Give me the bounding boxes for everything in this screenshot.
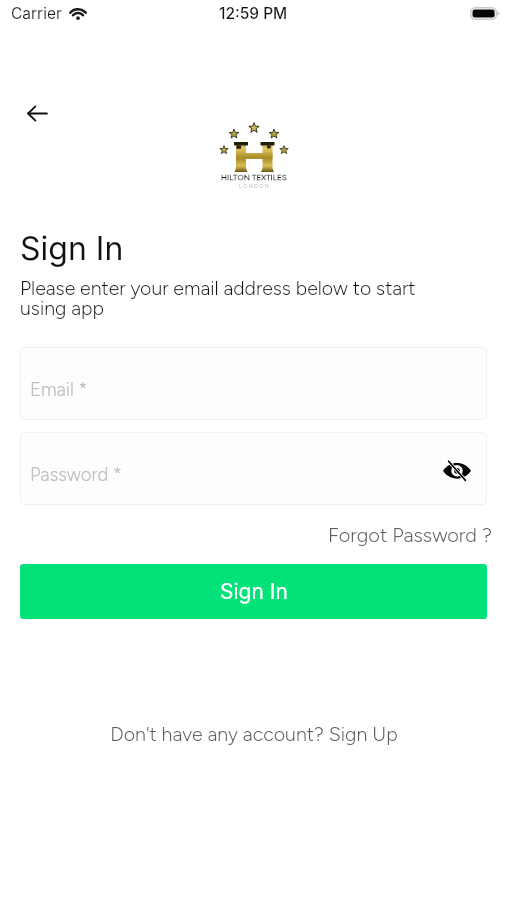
staticText: Sign In bbox=[220, 579, 288, 604]
staticText: HILTON TEXTILES bbox=[221, 172, 287, 182]
button[interactable]: Sign In bbox=[20, 564, 487, 619]
staticText: Password * bbox=[30, 463, 122, 485]
staticText: L O N D O N bbox=[239, 183, 269, 189]
staticText: Email * bbox=[30, 378, 88, 400]
staticText: Don't have any account? Sign Up bbox=[110, 722, 398, 746]
staticText: 12:59 PM bbox=[219, 4, 288, 23]
button[interactable]: Email * bbox=[20, 347, 487, 420]
button[interactable]: Don't have any account? Sign Up bbox=[108, 720, 400, 748]
button[interactable]: Show password bbox=[439, 452, 475, 488]
staticText: Sign In bbox=[20, 229, 124, 268]
staticText: Forgot Password ? bbox=[328, 523, 492, 547]
staticText: Carrier bbox=[11, 4, 62, 23]
button[interactable]: Forgot Password ? bbox=[328, 521, 492, 549]
button[interactable]: Password * bbox=[20, 432, 487, 505]
staticText: Please enter your email address below to… bbox=[20, 276, 440, 320]
button[interactable]: Back bbox=[15, 91, 60, 136]
